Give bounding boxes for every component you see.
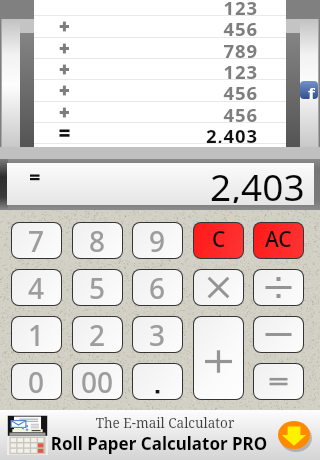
button[interactable]: Multiply	[194, 270, 243, 305]
staticText: 5	[89, 270, 106, 304]
button[interactable]: 2	[73, 317, 122, 352]
staticText: 0	[28, 364, 45, 398]
button[interactable]: Plus	[194, 317, 243, 399]
staticText: 00	[81, 364, 114, 398]
button[interactable]: Minus	[254, 317, 303, 352]
button[interactable]: 3	[133, 317, 182, 352]
staticText: 123	[223, 0, 258, 16]
button[interactable]: AC	[254, 223, 303, 258]
button[interactable]: Equals	[254, 364, 303, 399]
button[interactable]: 1	[12, 317, 61, 352]
staticText: C	[212, 225, 226, 254]
button[interactable]: 0	[12, 364, 61, 399]
button[interactable]: 5	[73, 270, 122, 305]
button[interactable]: Download	[278, 421, 310, 449]
staticText: 2,403	[205, 123, 258, 144]
staticText: 9	[149, 223, 166, 257]
staticText: 456	[223, 102, 258, 123]
button[interactable]: 00	[73, 364, 122, 399]
button[interactable]: The E-mail Calculator	[0, 410, 320, 460]
staticText: 8	[89, 223, 106, 257]
staticText: 123	[223, 59, 258, 80]
button[interactable]: 7	[12, 223, 61, 258]
staticText: 456	[223, 16, 258, 37]
button[interactable]: Facebook	[300, 81, 318, 99]
staticText: 789	[223, 38, 258, 59]
button[interactable]: 4	[12, 270, 61, 305]
button[interactable]: Decimal point	[133, 364, 182, 399]
staticText: 1	[28, 317, 45, 351]
button[interactable]: 9	[133, 223, 182, 258]
button[interactable]: 2,403	[7, 163, 314, 205]
button[interactable]: 8	[73, 223, 122, 258]
staticText: 2,403	[210, 161, 305, 203]
staticText: 4	[28, 270, 45, 304]
button[interactable]: C	[194, 223, 243, 258]
staticText: 2	[89, 317, 106, 351]
staticText: Roll Paper Calculator PRO	[0, 432, 319, 455]
staticText: f	[308, 82, 315, 99]
staticText: 456	[223, 80, 258, 101]
button[interactable]: Divide	[254, 270, 303, 305]
staticText: 6	[149, 270, 166, 304]
button[interactable]: 6	[133, 270, 182, 305]
staticText: 7	[28, 223, 45, 257]
staticText: The E-mail Calculator	[5, 414, 320, 432]
staticText: 3	[149, 317, 166, 351]
staticText: AC	[265, 225, 292, 254]
